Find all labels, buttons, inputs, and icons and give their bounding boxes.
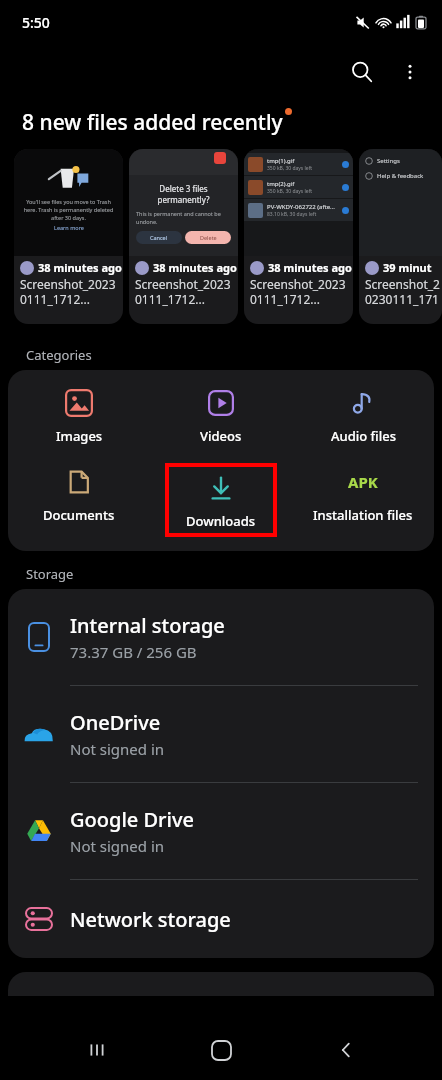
staticText: Videos xyxy=(200,427,242,445)
staticText: Delete xyxy=(200,234,217,241)
staticText: 8 new files added recently xyxy=(22,108,283,137)
button[interactable]: You'll see files you move to Trash here.… xyxy=(14,149,123,324)
staticText: Delete 3 files permanently? xyxy=(136,183,231,205)
staticText: Downloads xyxy=(186,512,256,530)
button[interactable]: More options xyxy=(386,48,434,96)
staticText: 83.10 kB, 30 days left xyxy=(267,211,317,218)
staticText: Screenshot_20230111_1712... xyxy=(20,276,121,307)
button[interactable]: OneDrive xyxy=(8,686,434,782)
button[interactable]: Internal storage xyxy=(8,589,434,685)
staticText: Help & feedback xyxy=(377,172,424,180)
staticText: Screenshot_20230111_1712... xyxy=(365,276,440,307)
staticText: Settings xyxy=(377,157,400,165)
button[interactable]: Documents xyxy=(8,463,150,526)
staticText: Images xyxy=(56,427,103,445)
button[interactable]: Audio files xyxy=(292,384,434,447)
staticText: 350 kB, 30 days left xyxy=(267,188,313,195)
button[interactable]: tmp(1).gif xyxy=(244,149,353,324)
staticText: 73.37 GB / 256 GB xyxy=(70,642,197,662)
staticText: Internal storage xyxy=(70,612,225,639)
staticText: Screenshot_20230111_1712... xyxy=(250,276,351,307)
staticText: Installation files xyxy=(313,506,413,524)
staticText: Google Drive xyxy=(70,806,194,833)
staticText: tmp(1).gif xyxy=(267,157,295,165)
button[interactable]: Settings xyxy=(359,149,442,324)
staticText: Learn more xyxy=(54,224,84,231)
button[interactable]: Recents xyxy=(69,1022,125,1078)
staticText: Network storage xyxy=(70,906,231,933)
staticText: Not signed in xyxy=(70,836,165,856)
staticText: 39 minut xyxy=(383,260,432,275)
button[interactable]: Downloads xyxy=(169,469,273,532)
button[interactable]: Delete 3 files permanently? xyxy=(129,149,238,324)
staticText: 38 minutes ago xyxy=(153,260,237,275)
button[interactable]: Back xyxy=(318,1022,374,1078)
staticText: Audio files xyxy=(331,427,396,445)
staticText: Cancel xyxy=(150,234,168,241)
button[interactable]: Google Drive xyxy=(8,783,434,879)
button[interactable]: Search xyxy=(338,48,386,96)
staticText: 350 kB, 30 days left xyxy=(267,165,313,172)
staticText: tmp(2).gif xyxy=(267,180,295,188)
button[interactable]: APK xyxy=(292,463,434,526)
staticText: PV-WKDY-062722 (afte... xyxy=(267,203,335,211)
staticText: OneDrive xyxy=(70,709,161,736)
button[interactable]: Videos xyxy=(150,384,292,447)
button[interactable]: Home xyxy=(193,1022,249,1078)
staticText: Documents xyxy=(43,506,115,524)
staticText: Screenshot_20230111_1712... xyxy=(135,276,236,307)
staticText: 38 minutes ago xyxy=(268,260,352,275)
staticText: APK xyxy=(348,472,378,492)
staticText: Categories xyxy=(26,346,92,364)
staticText: This is permanent and cannot be undone. xyxy=(136,210,231,226)
staticText: Storage xyxy=(26,565,74,583)
button[interactable]: Network storage xyxy=(8,880,434,958)
staticText: 5:50 xyxy=(22,13,50,32)
staticText: You'll see files you move to Trash here.… xyxy=(20,198,117,222)
button[interactable]: Images xyxy=(8,384,150,447)
staticText: Not signed in xyxy=(70,739,165,759)
staticText: 38 minutes ago xyxy=(38,260,122,275)
